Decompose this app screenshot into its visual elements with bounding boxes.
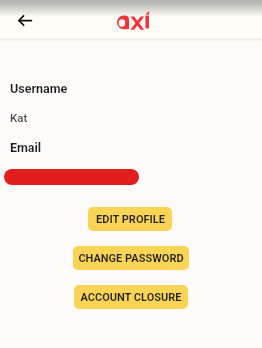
staticText: CHANGE PASSWORD [78,252,184,265]
button[interactable]: CHANGE PASSWORD [73,246,189,270]
button[interactable]: Back [12,7,38,33]
staticText: ACCOUNT CLOSURE [80,291,182,304]
staticText: Username [10,81,68,96]
button[interactable]: ACCOUNT CLOSURE [74,285,188,309]
staticText: Kat [10,111,28,124]
staticText: Email [10,140,42,155]
button[interactable]: EDIT PROFILE [88,207,172,231]
staticText: EDIT PROFILE [96,213,165,226]
